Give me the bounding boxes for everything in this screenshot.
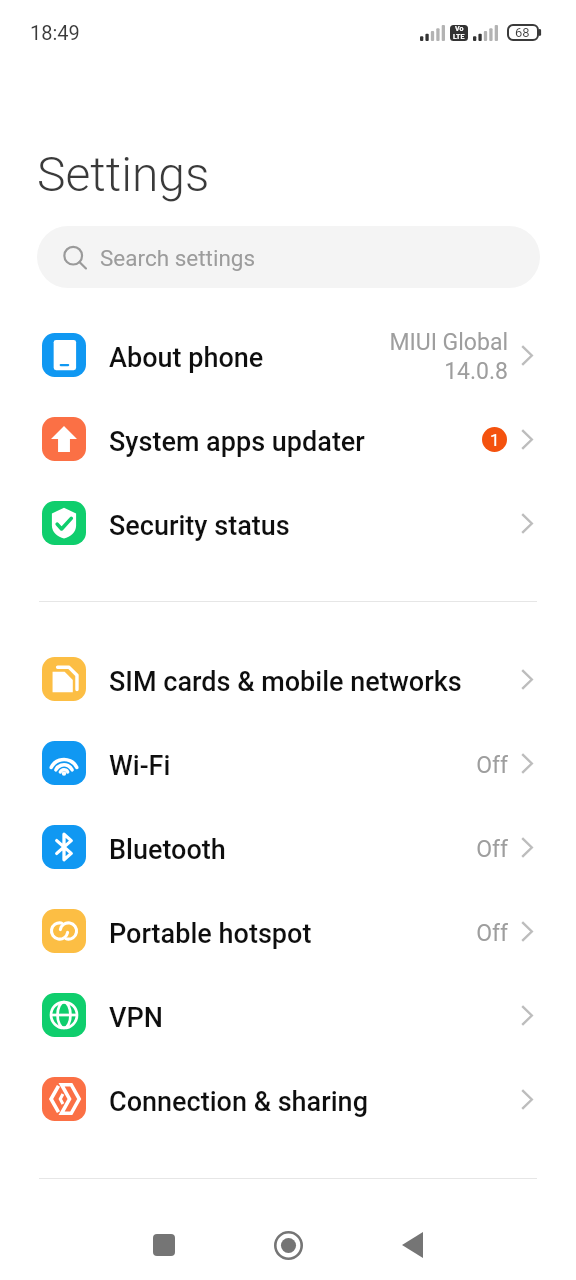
staticText: Wi-Fi: [109, 750, 476, 782]
staticText: Connection & sharing: [109, 1086, 521, 1118]
staticText: Security status: [109, 510, 521, 542]
button[interactable]: Back: [350, 1178, 474, 1280]
staticText: SIM cards & mobile networks: [109, 666, 521, 698]
staticText: Off: [476, 752, 508, 779]
staticText: 18:49: [30, 21, 80, 44]
staticText: Settings: [37, 146, 210, 202]
button[interactable]: SIM cards & mobile networks: [0, 637, 576, 721]
staticText: LTE: [453, 33, 465, 41]
button[interactable]: VPN: [0, 973, 576, 1057]
staticText: Off: [476, 920, 508, 947]
button[interactable]: System apps updater: [0, 397, 576, 481]
staticText: About phone: [109, 342, 389, 374]
staticText: Vo: [455, 25, 464, 33]
staticText: Off: [476, 836, 508, 863]
staticText: 1: [490, 430, 500, 450]
button[interactable]: Security status: [0, 481, 576, 565]
staticText: VPN: [109, 1002, 521, 1034]
staticText: Bluetooth: [109, 834, 476, 866]
button[interactable]: Portable hotspot: [0, 889, 576, 973]
button[interactable]: Connection & sharing: [0, 1057, 576, 1141]
staticText: Portable hotspot: [109, 918, 476, 950]
button[interactable]: Bluetooth: [0, 805, 576, 889]
button[interactable]: Recent apps: [102, 1178, 226, 1280]
button[interactable]: Home: [226, 1178, 350, 1280]
button[interactable]: About phone: [0, 313, 576, 397]
staticText: MIUI Global 14.0.8: [389, 329, 508, 385]
staticText: Search settings: [100, 245, 256, 271]
button[interactable]: Wi-Fi: [0, 721, 576, 805]
button[interactable]: Search settings: [37, 226, 540, 288]
staticText: System apps updater: [109, 426, 482, 458]
staticText: 68: [515, 25, 530, 40]
